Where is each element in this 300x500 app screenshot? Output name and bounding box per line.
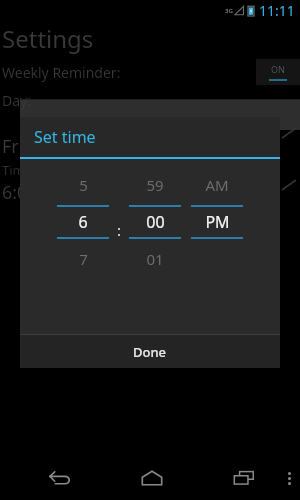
button[interactable]: AM (186, 171, 248, 273)
staticText: Friday (2, 134, 54, 159)
button[interactable]: Home (130, 456, 174, 500)
staticText: Set time (34, 126, 96, 148)
staticText: 59 (146, 175, 164, 195)
staticText: ON (271, 63, 285, 75)
staticText: 6 (78, 211, 88, 233)
staticText: 11:11 (259, 1, 295, 20)
staticText: PM (205, 211, 230, 233)
staticText: 3G (225, 7, 233, 15)
staticText: Settings (2, 22, 94, 55)
staticText: AM (205, 175, 229, 195)
staticText: Time: (2, 161, 36, 179)
button[interactable]: Back (38, 456, 82, 500)
staticText: Weekly Reminder: (2, 63, 121, 82)
button[interactable]: 59 (124, 171, 186, 273)
staticText: 6:00 PM (2, 180, 70, 205)
button[interactable]: ON (256, 59, 300, 85)
button[interactable]: Recent apps (222, 456, 266, 500)
staticText: 01 (146, 249, 164, 269)
staticText: Done (133, 343, 167, 361)
staticText: 7 (79, 249, 88, 269)
staticText: Day: (2, 91, 31, 110)
button[interactable]: More options (278, 463, 300, 493)
staticText: 00 (146, 211, 165, 233)
staticText: : (117, 220, 122, 240)
button[interactable]: Done (20, 335, 280, 368)
button[interactable]: 5 (52, 171, 114, 273)
staticText: 5 (79, 175, 88, 195)
